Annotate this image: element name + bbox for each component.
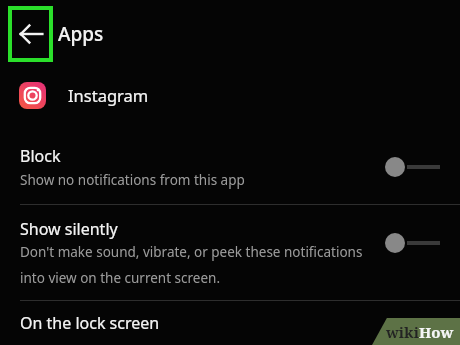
button[interactable]: Instagram [0, 68, 460, 122]
staticText: wiki [386, 322, 419, 342]
button[interactable]: Block [0, 138, 460, 204]
staticText: On the lock screen [20, 312, 160, 334]
button[interactable]: Show silently toggle [385, 229, 440, 257]
staticText: Show no notifications from this app [20, 171, 245, 189]
button[interactable]: Block notifications toggle [385, 153, 440, 181]
button[interactable]: On the lock screen [0, 301, 460, 345]
staticText: Don't make sound, vibrate, or peek these… [20, 243, 385, 287]
staticText: How [419, 322, 454, 342]
button[interactable]: Back [12, 10, 49, 58]
staticText: Apps [58, 21, 104, 47]
staticText: Instagram [68, 84, 149, 106]
staticText: Show silently [20, 218, 118, 240]
button[interactable]: Show silently [0, 205, 460, 300]
staticText: Block [20, 145, 61, 167]
